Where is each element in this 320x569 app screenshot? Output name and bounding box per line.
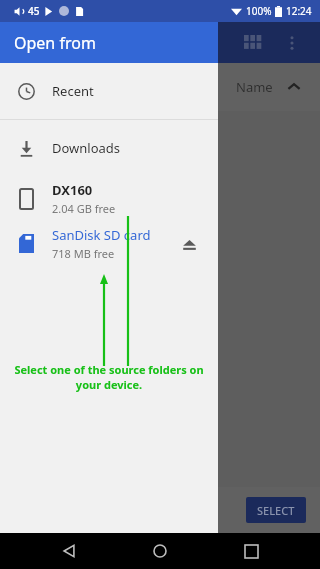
button[interactable]: SanDisk SD card — [0, 221, 218, 266]
staticText: Name — [236, 78, 273, 96]
button[interactable]: SELECT — [246, 497, 306, 523]
button[interactable]: More options — [272, 23, 312, 63]
staticText: Select one of the source folders on your… — [10, 362, 208, 392]
staticText: SELECT — [257, 503, 295, 518]
staticText: 45 — [28, 4, 40, 18]
staticText: 12:24 — [286, 4, 312, 18]
button[interactable]: DX160 — [0, 176, 218, 221]
button[interactable]: Recent apps — [229, 533, 273, 569]
button[interactable]: Home — [138, 533, 182, 569]
button[interactable]: Eject SD card — [174, 229, 204, 259]
button[interactable]: Downloads — [0, 120, 218, 176]
staticText: 100% — [246, 4, 272, 18]
staticText: Downloads — [52, 139, 121, 157]
button[interactable]: Back — [47, 533, 91, 569]
button[interactable]: Grid view — [232, 23, 272, 63]
staticText: Recent — [52, 82, 94, 100]
staticText: 718 MB free — [52, 246, 115, 261]
staticText: SanDisk SD card — [52, 226, 151, 244]
staticText: Open from — [14, 32, 96, 54]
button[interactable]: Name — [236, 78, 301, 96]
button[interactable]: Recent — [0, 63, 218, 119]
staticText: DX160 — [52, 181, 93, 199]
staticText: 2.04 GB free — [52, 201, 116, 216]
